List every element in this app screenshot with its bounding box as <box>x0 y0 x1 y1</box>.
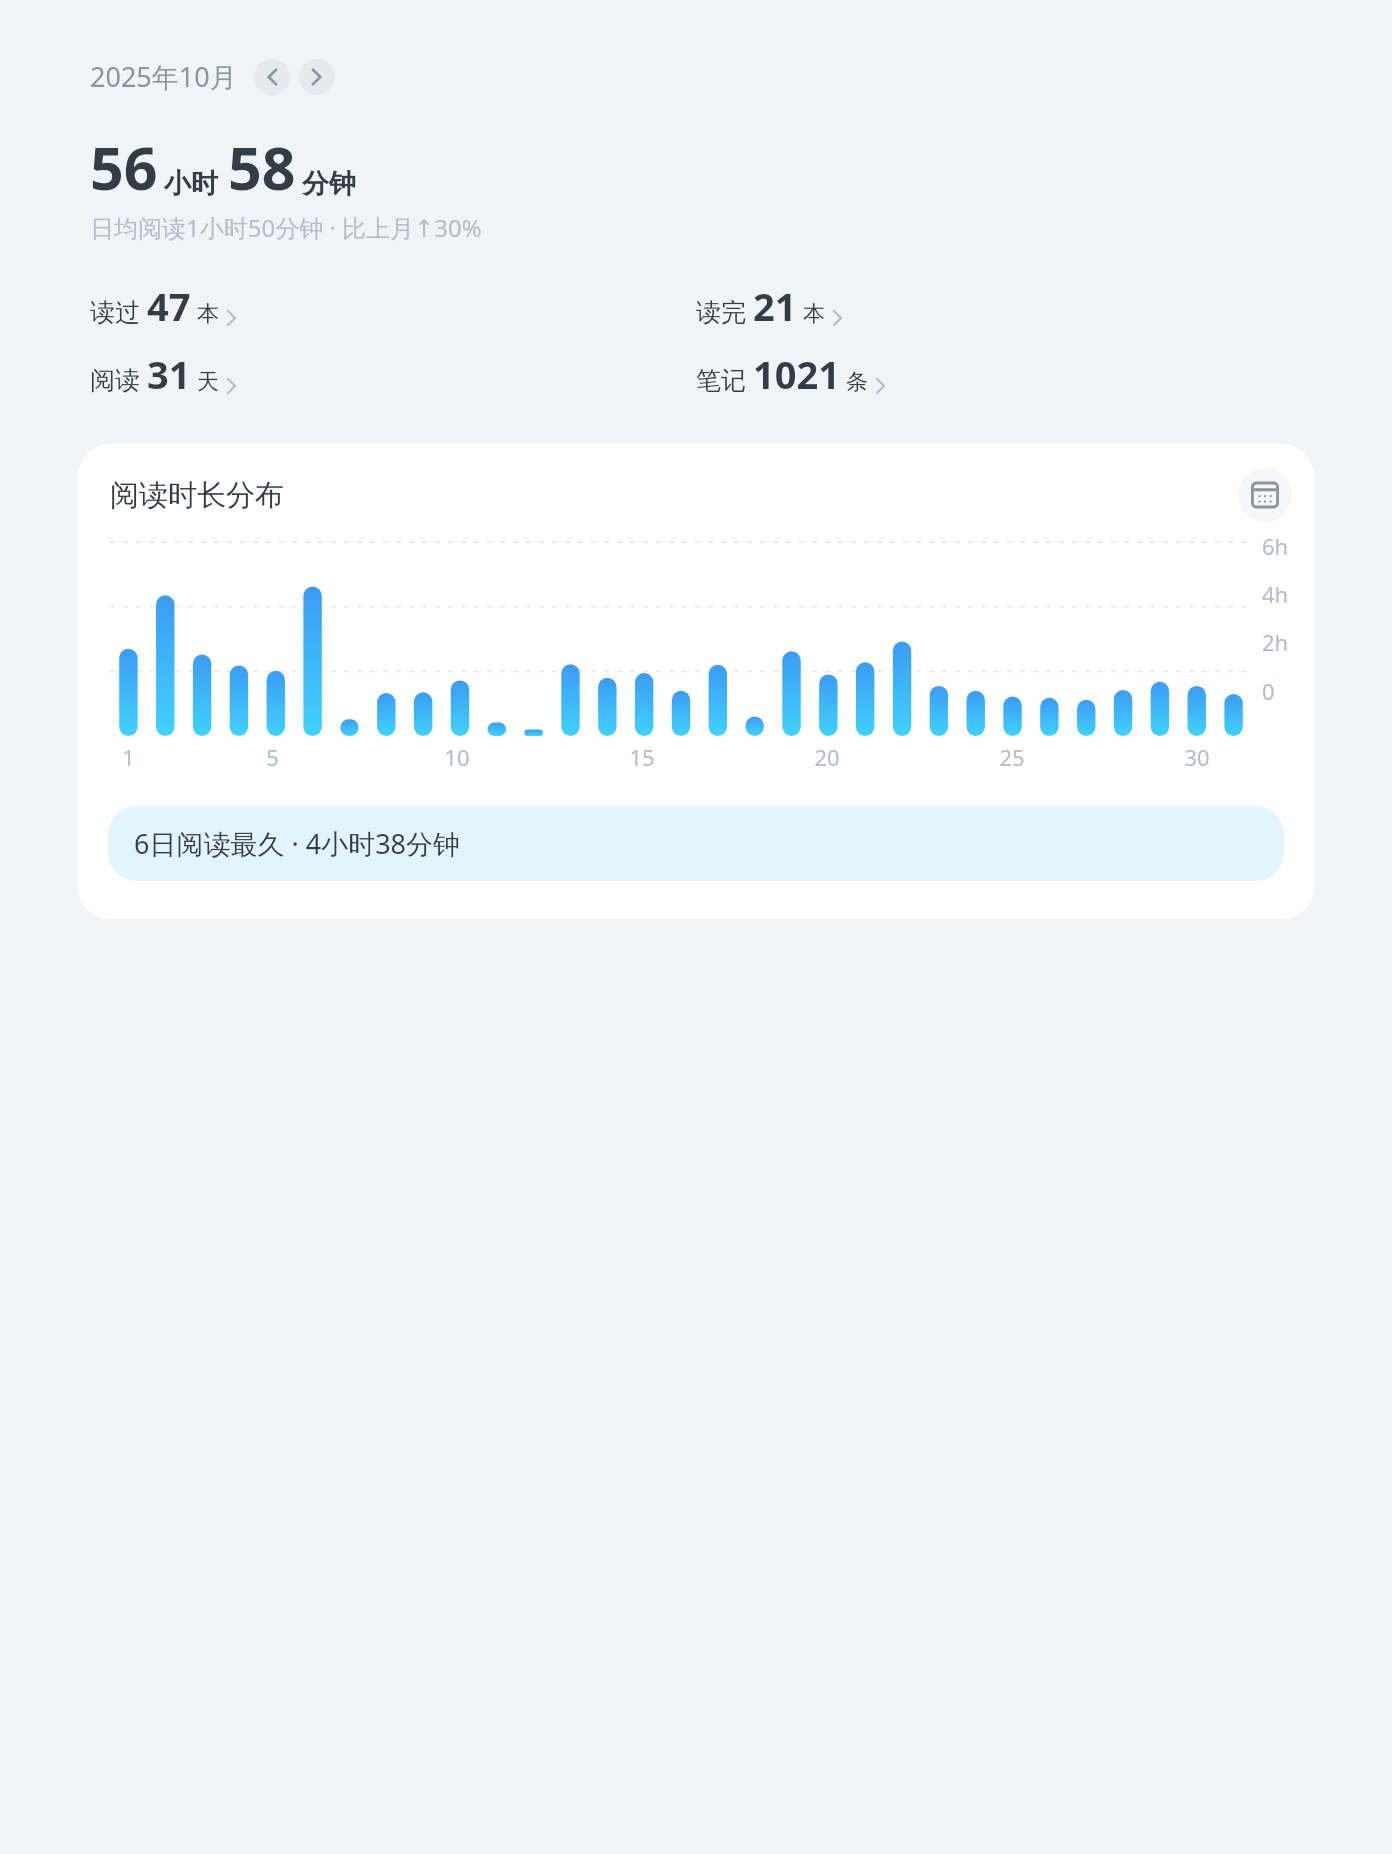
staticText: 2025年10月 <box>90 58 237 95</box>
staticText: 2h <box>1262 627 1289 657</box>
staticText: 读过 <box>90 297 140 328</box>
staticText: 6日阅读最久 · 4小时38分钟 <box>134 825 461 862</box>
staticText: 阅读 <box>90 365 140 396</box>
button[interactable]: 读过 <box>90 280 696 332</box>
staticText: 6h <box>1262 531 1289 561</box>
staticText: 日均阅读1小时50分钟 · 比上月↑30% <box>90 211 482 244</box>
staticText: 本 <box>803 300 825 328</box>
staticText: 5 <box>266 742 279 772</box>
staticText: 天 <box>197 368 219 396</box>
staticText: 58 <box>228 127 296 207</box>
staticText: 本 <box>197 300 219 328</box>
staticText: 阅读时长分布 <box>110 477 284 514</box>
staticText: 分钟 <box>302 167 356 201</box>
staticText: 25 <box>999 742 1025 772</box>
button[interactable]: 读完 <box>696 280 1302 332</box>
button[interactable]: Calendar <box>1238 468 1292 522</box>
staticText: 15 <box>629 742 655 772</box>
button[interactable]: 笔记 <box>696 348 1302 400</box>
staticText: 0 <box>1262 676 1275 706</box>
button[interactable]: 阅读 <box>90 348 696 400</box>
button[interactable]: Previous month <box>254 59 290 95</box>
staticText: 4h <box>1262 579 1289 609</box>
staticText: 30 <box>1184 742 1210 772</box>
button[interactable]: 6日阅读最久 · 4小时38分钟 <box>108 806 1284 881</box>
staticText: 1021 <box>753 348 840 400</box>
staticText: 31 <box>147 348 191 400</box>
staticText: 56 <box>90 127 158 207</box>
staticText: 条 <box>846 368 868 396</box>
staticText: 21 <box>753 280 797 332</box>
staticText: 读完 <box>696 297 746 328</box>
staticText: 笔记 <box>696 365 746 396</box>
staticText: 10 <box>444 742 470 772</box>
button[interactable]: Next month <box>299 59 335 95</box>
staticText: 1 <box>122 742 135 772</box>
staticText: 47 <box>147 280 191 332</box>
staticText: 20 <box>814 742 840 772</box>
staticText: 小时 <box>164 167 218 201</box>
